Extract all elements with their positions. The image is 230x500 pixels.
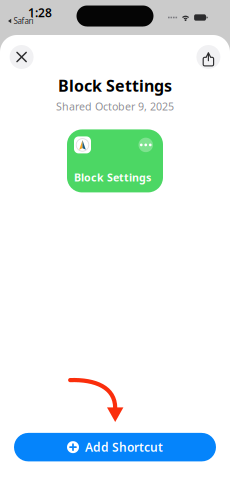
staticText: Shared October 9, 2025 — [56, 99, 174, 113]
button[interactable]: Add Shortcut — [14, 433, 216, 461]
staticText: Safari — [13, 16, 33, 26]
button[interactable]: More options — [138, 138, 153, 152]
button[interactable]: Share — [191, 41, 225, 73]
staticText: Block Settings — [58, 75, 172, 96]
button[interactable]: Close — [5, 41, 39, 73]
staticText: 1:28 — [28, 4, 52, 20]
staticText: Add Shortcut — [85, 439, 163, 455]
staticText: Block Settings — [74, 170, 151, 184]
